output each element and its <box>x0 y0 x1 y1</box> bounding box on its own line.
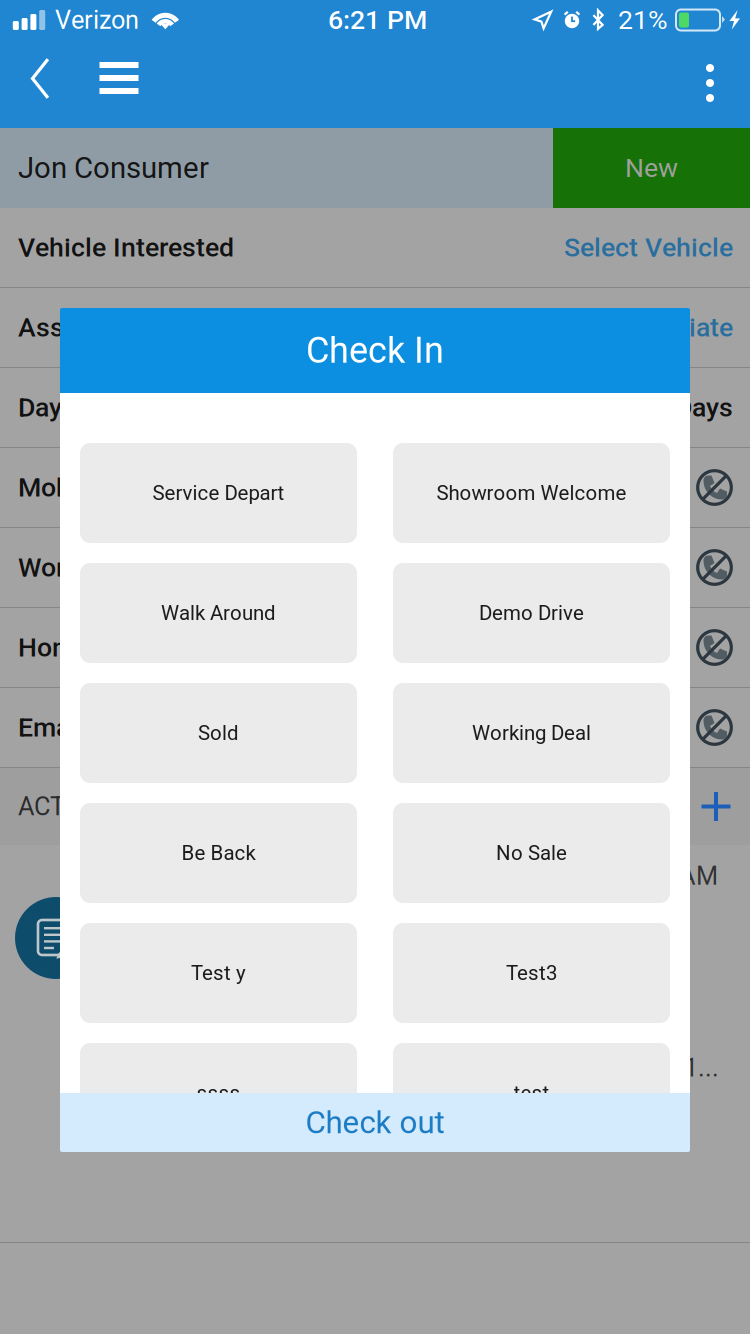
staticText: Associate <box>614 312 733 343</box>
button[interactable]: ssss <box>80 1043 357 1143</box>
staticText: Home <box>18 632 89 663</box>
button[interactable]: Walk Around <box>80 563 357 663</box>
staticText: Mobile <box>18 472 99 503</box>
staticText: Demo Drive <box>479 601 584 625</box>
staticText: Sold <box>198 721 239 745</box>
button[interactable]: Add activity <box>690 780 742 832</box>
staticText: New <box>625 152 678 184</box>
button[interactable]: Test3 <box>393 923 670 1023</box>
staticText: Verizon <box>55 5 139 35</box>
button[interactable]: Showroom Welcome <box>393 443 670 543</box>
staticText: 11:22 AM <box>611 861 718 891</box>
staticText: 21% <box>618 4 668 36</box>
button[interactable]: No Sale <box>393 803 670 903</box>
button[interactable]: Check out <box>60 1093 690 1152</box>
button[interactable]: Demo Drive <box>393 563 670 663</box>
staticText: Service Depart <box>152 481 284 505</box>
staticText: Select Vehicle <box>564 232 733 263</box>
staticText: Days in Pipeline <box>18 392 208 423</box>
staticText: 6:21 PM <box>328 4 427 36</box>
staticText: Check In <box>306 329 444 372</box>
button[interactable]: Menu <box>70 40 159 128</box>
staticText: Be Back <box>181 841 255 865</box>
staticText: Vehicle Interested <box>18 232 234 263</box>
staticText: 0 Days <box>653 392 733 423</box>
button[interactable]: New note <box>15 897 97 979</box>
staticText: Email <box>18 712 84 743</box>
button[interactable]: More options <box>675 40 745 128</box>
button[interactable]: Sold <box>80 683 357 783</box>
button[interactable]: Working Deal <box>393 683 670 783</box>
staticText: Work <box>18 552 79 583</box>
button[interactable]: Test y <box>80 923 357 1023</box>
staticText: Working Deal <box>472 721 591 745</box>
staticText: ssss <box>196 1081 240 1105</box>
button[interactable]: Back <box>10 40 70 128</box>
button[interactable]: test <box>393 1043 670 1143</box>
staticText: test <box>513 1081 549 1105</box>
staticText: 11:21... <box>636 1053 719 1083</box>
staticText: Check out <box>305 1104 444 1141</box>
staticText: Walk Around <box>161 601 276 625</box>
staticText: Showroom Welcome <box>436 481 626 505</box>
staticText: Test y <box>191 961 246 985</box>
staticText: Assigned To <box>18 312 165 343</box>
staticText: Test3 <box>506 961 557 985</box>
staticText: ACTIVITIES <box>18 792 146 821</box>
staticText: No Sale <box>496 841 567 865</box>
staticText: Jon Consumer <box>18 151 209 185</box>
button[interactable]: Be Back <box>80 803 357 903</box>
button[interactable]: Service Depart <box>80 443 357 543</box>
